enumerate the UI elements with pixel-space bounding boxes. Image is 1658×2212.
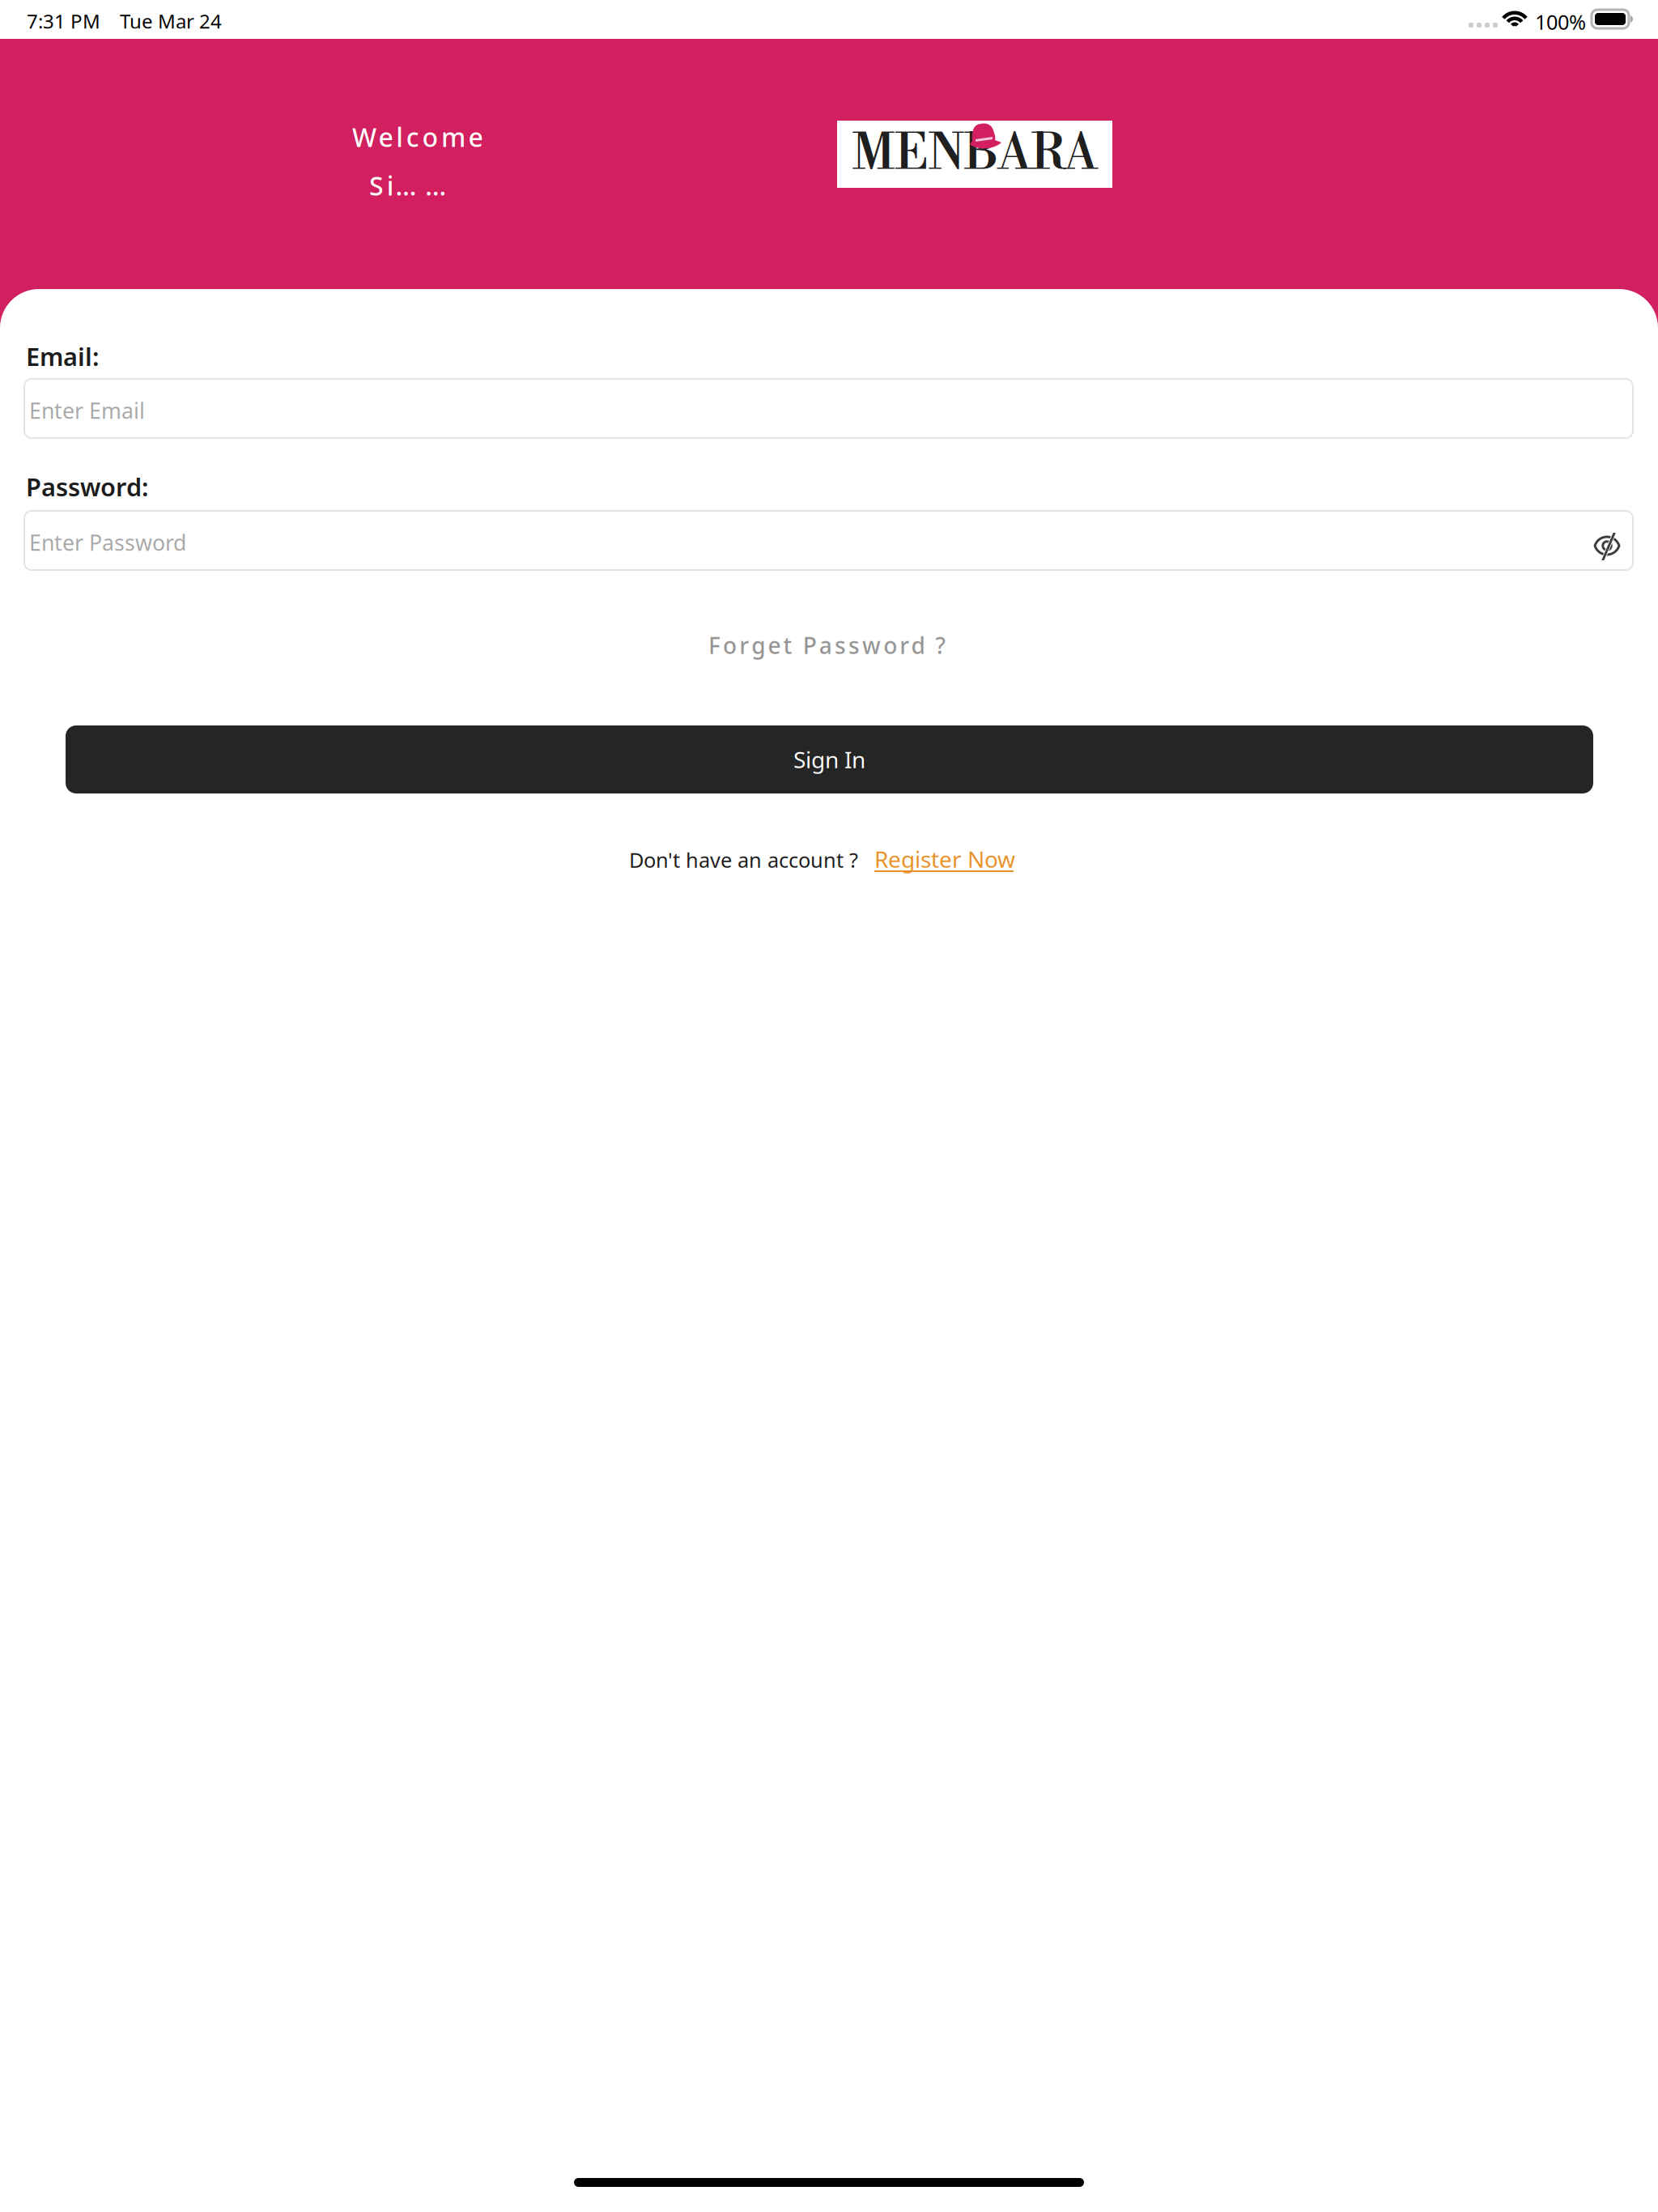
staticText: Tue Mar 24 [120,8,222,34]
button[interactable]: Show password [1587,527,1627,566]
staticText: Don't have an account ? [629,846,858,873]
staticText: Register Now [874,844,1015,874]
staticText: 7:31 PM [27,8,100,34]
button[interactable]: Register Now [874,843,1069,875]
staticText: Enter Password [29,528,186,557]
staticText: Forget Password ? [708,630,946,660]
staticText: Password: [26,470,148,503]
staticText: 100% [1535,8,1586,35]
staticText: MENBARA [852,124,1097,185]
staticText: Welcome [352,120,483,154]
staticText: Sign In [793,744,865,775]
button[interactable]: Sign In [66,725,1593,793]
staticText: Enter Email [29,396,145,425]
staticText: Email: [26,340,99,373]
staticText: In [427,168,455,203]
staticText: Sign [369,168,432,203]
button[interactable]: Forget Password ? [708,625,959,666]
